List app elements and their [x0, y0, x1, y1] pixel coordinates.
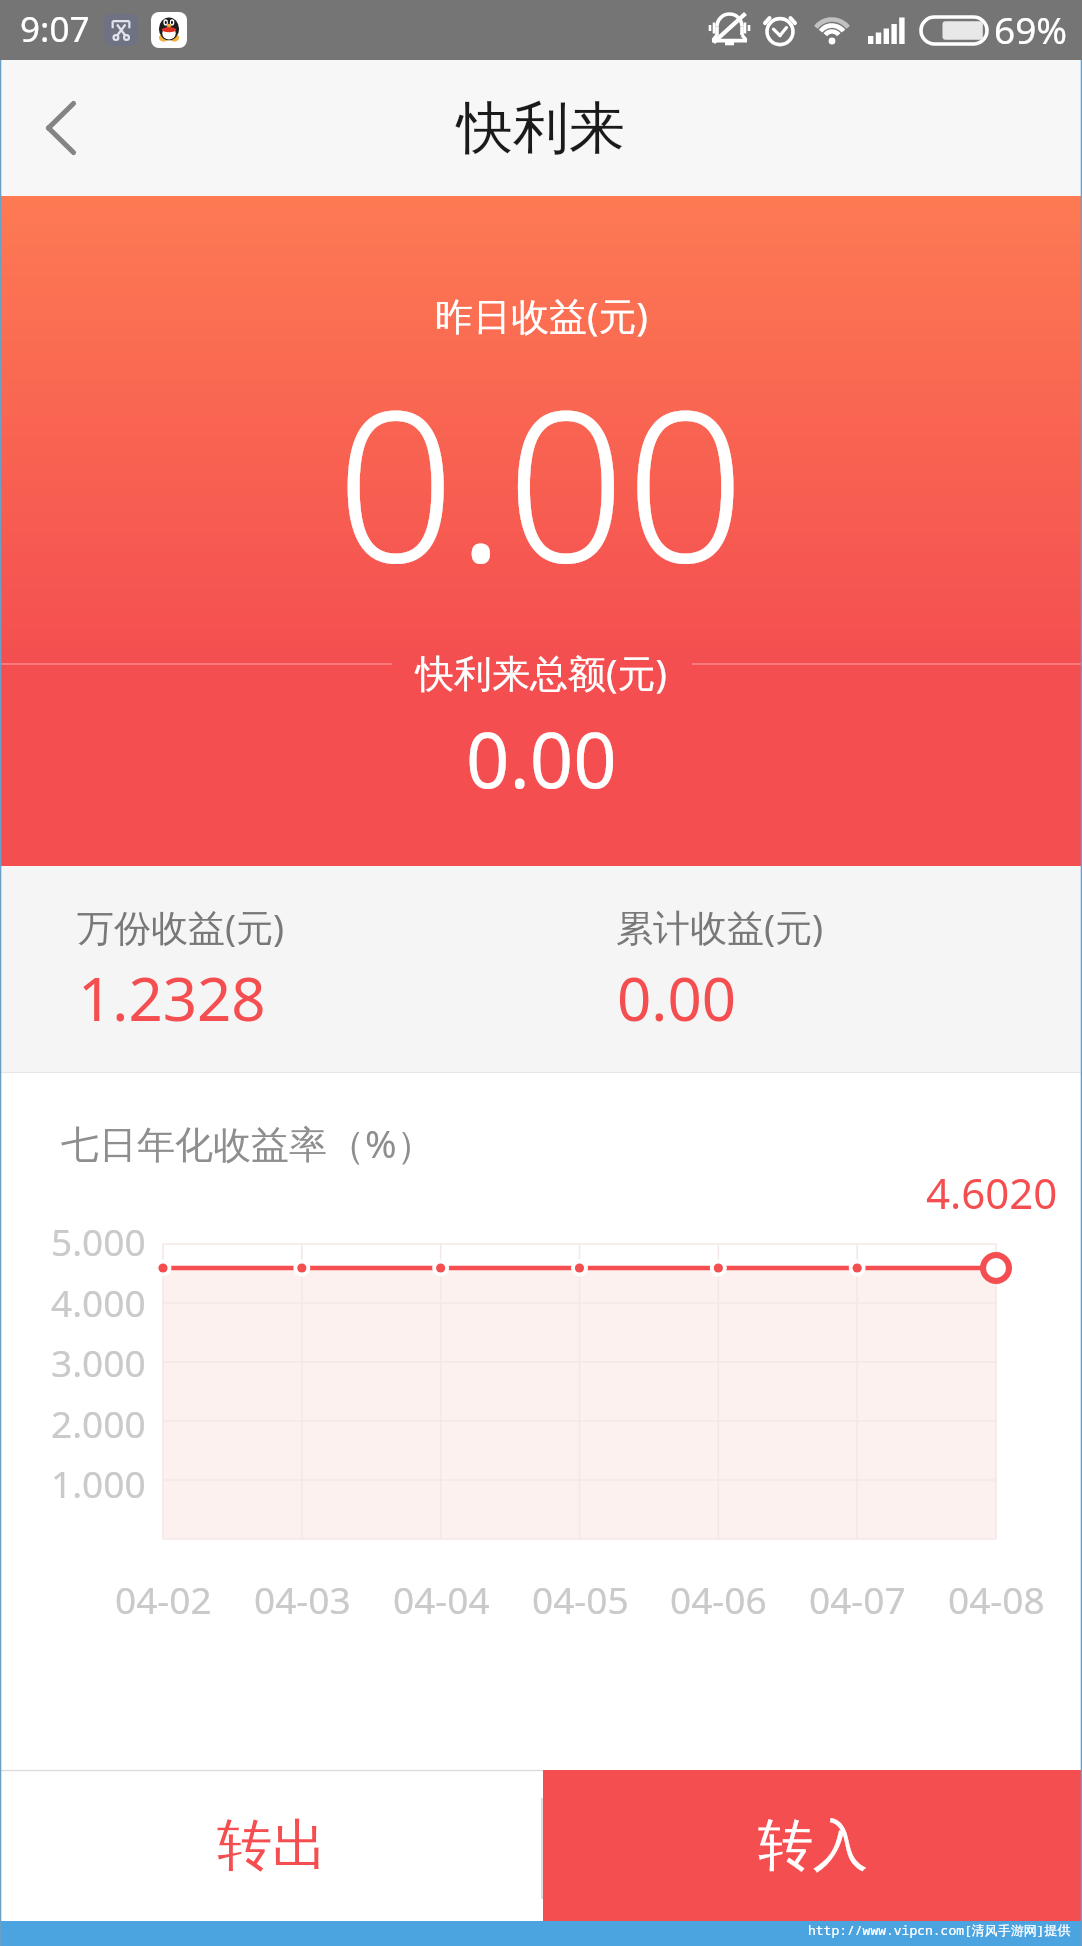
staticText: 七日年化收益率（%） [61, 1117, 435, 1169]
staticText: http://www.vipcn.com[清风手游网]提供 [808, 1921, 1071, 1939]
staticText: 0.00 [617, 957, 737, 1039]
staticText: 累计收益(元) [616, 901, 824, 952]
button[interactable]: Back [8, 60, 118, 196]
button[interactable]: 转出 [0, 1770, 543, 1921]
staticText: 04-02 [115, 1574, 212, 1624]
staticText: 4.000 [51, 1277, 146, 1327]
staticText: 转入 [758, 1811, 868, 1880]
staticText: 04-04 [393, 1574, 490, 1624]
button[interactable]: 转入 [543, 1770, 1082, 1921]
staticText: 04-05 [532, 1574, 629, 1624]
staticText: 快利来总额(元) [416, 646, 667, 698]
staticText: 0.00 [336, 339, 746, 624]
staticText: 9:07 [20, 5, 90, 53]
staticText: 1.2328 [78, 957, 266, 1039]
staticText: 04-08 [948, 1574, 1045, 1624]
staticText: 昨日收益(元) [435, 289, 648, 341]
staticText: 1.000 [51, 1458, 146, 1508]
staticText: 0.00 [466, 707, 617, 811]
staticText: 04-06 [670, 1574, 767, 1624]
staticText: 4.6020 [926, 1164, 1058, 1221]
staticText: 万份收益(元) [77, 901, 285, 952]
staticText: 04-07 [809, 1574, 906, 1624]
staticText: 快利来 [457, 93, 625, 164]
staticText: 5.000 [51, 1216, 146, 1266]
staticText: 转出 [217, 1811, 327, 1880]
staticText: 69% [994, 4, 1068, 54]
staticText: 3.000 [51, 1337, 146, 1387]
staticText: 2.000 [51, 1398, 146, 1448]
staticText: 04-03 [254, 1574, 351, 1624]
